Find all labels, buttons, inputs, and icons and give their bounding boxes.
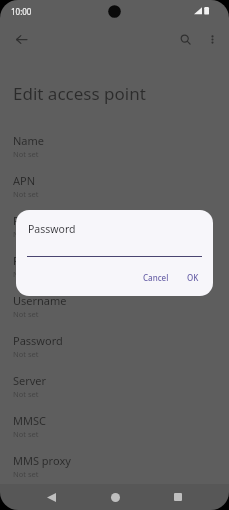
staticText: MMSC: [13, 413, 46, 428]
button[interactable]: Username: [0, 287, 229, 327]
button[interactable]: Back: [6, 24, 36, 54]
staticText: Not set: [13, 229, 39, 239]
staticText: Edit access point: [13, 82, 146, 105]
staticText: Not set: [13, 309, 39, 319]
staticText: 10:00: [11, 6, 32, 17]
button[interactable]: Proxy: [0, 207, 229, 247]
button[interactable]: Port: [0, 247, 229, 287]
staticText: Password: [13, 333, 63, 348]
button[interactable]: Server: [0, 367, 229, 407]
button[interactable]: More options: [199, 26, 225, 52]
staticText: Proxy: [13, 213, 42, 228]
button[interactable]: Search: [171, 25, 199, 53]
button[interactable]: MMSC: [0, 407, 229, 447]
button[interactable]: Home: [102, 484, 128, 510]
staticText: MMS proxy: [13, 453, 71, 468]
staticText: OK: [187, 272, 199, 283]
staticText: Name: [13, 133, 45, 148]
staticText: Cancel: [143, 272, 169, 283]
button[interactable]: Cancel: [137, 268, 175, 287]
button[interactable]: MMS proxy: [0, 447, 229, 487]
button[interactable]: Recent apps: [165, 484, 191, 510]
staticText: Not set: [13, 469, 39, 479]
button[interactable]: Name: [0, 127, 229, 167]
staticText: APN: [13, 173, 36, 188]
staticText: Not set: [13, 429, 39, 439]
button[interactable]: APN: [0, 167, 229, 207]
staticText: Not set: [13, 189, 39, 199]
staticText: Not set: [13, 149, 39, 159]
staticText: Not set: [13, 349, 39, 359]
staticText: Username: [13, 293, 67, 308]
staticText: Server: [13, 373, 47, 388]
staticText: Password: [28, 222, 76, 236]
button[interactable]: Password: [0, 327, 229, 367]
button[interactable]: OK: [181, 268, 205, 287]
staticText: Not set: [13, 389, 39, 399]
staticText: Not set: [13, 269, 39, 279]
staticText: Port: [13, 253, 35, 268]
button[interactable]: Back: [38, 484, 64, 510]
